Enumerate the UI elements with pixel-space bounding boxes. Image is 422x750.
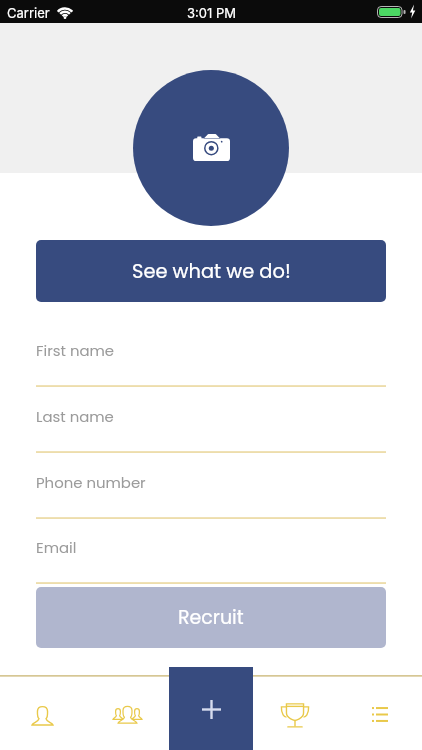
staticText: Phone number: [36, 472, 146, 493]
button[interactable]: Add photo: [133, 70, 289, 226]
button[interactable]: Email: [36, 533, 386, 583]
button[interactable]: First name: [36, 336, 386, 386]
staticText: First name: [36, 340, 115, 361]
button[interactable]: Profile: [10, 667, 74, 750]
button[interactable]: See what we do!: [36, 240, 386, 302]
button[interactable]: Recruit: [36, 587, 386, 648]
button[interactable]: List: [348, 667, 412, 750]
staticText: See what we do!: [132, 258, 291, 285]
button[interactable]: Team: [95, 667, 159, 750]
button[interactable]: Phone number: [36, 468, 386, 518]
button[interactable]: Add: [169, 667, 253, 750]
staticText: 3:01 PM: [187, 5, 236, 21]
staticText: Carrier: [7, 5, 50, 21]
staticText: Recruit: [178, 604, 244, 631]
staticText: Last name: [36, 406, 114, 427]
button[interactable]: Last name: [36, 402, 386, 452]
button[interactable]: Leaderboard: [263, 667, 327, 750]
staticText: Email: [36, 537, 77, 558]
